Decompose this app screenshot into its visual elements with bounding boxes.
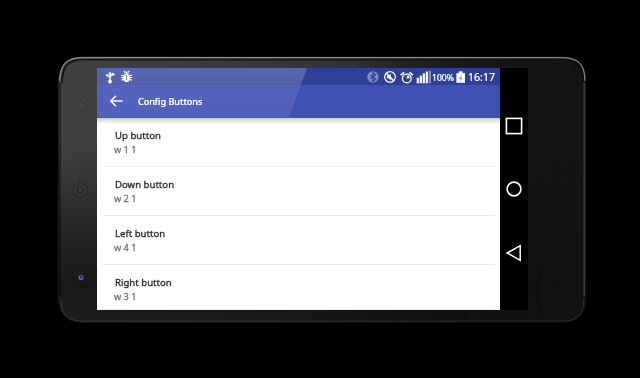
staticText: Down button bbox=[115, 178, 175, 191]
staticText: Up button bbox=[115, 129, 161, 142]
staticText: w 3 1 bbox=[114, 290, 137, 303]
staticText: w 2 1 bbox=[114, 192, 137, 205]
button[interactable]: Down button bbox=[97, 167, 500, 216]
button[interactable]: Back bbox=[500, 242, 528, 264]
button[interactable]: Up button bbox=[97, 118, 500, 167]
staticText: Config Buttons bbox=[138, 95, 203, 107]
staticText: Left button bbox=[115, 227, 166, 240]
staticText: Right button bbox=[115, 276, 172, 289]
staticText: Down button bbox=[115, 178, 175, 191]
button[interactable]: Home bbox=[500, 178, 528, 200]
staticText: w 1 1 bbox=[114, 143, 137, 156]
staticText: 100% bbox=[432, 72, 454, 84]
staticText: w 4 1 bbox=[114, 241, 137, 254]
staticText: 16:17 bbox=[468, 70, 496, 84]
button[interactable]: Navigate up bbox=[103, 87, 129, 115]
staticText: Left button bbox=[115, 227, 166, 240]
staticText: w 3 1 bbox=[114, 290, 137, 303]
staticText: w 2 1 bbox=[114, 192, 137, 205]
staticText: Up button bbox=[115, 129, 161, 142]
button[interactable]: Right button bbox=[97, 265, 500, 310]
button[interactable]: Recents bbox=[500, 115, 528, 137]
staticText: w 1 1 bbox=[114, 143, 137, 156]
button[interactable]: Left button bbox=[97, 216, 500, 265]
staticText: Right button bbox=[115, 276, 172, 289]
staticText: w 4 1 bbox=[114, 241, 137, 254]
